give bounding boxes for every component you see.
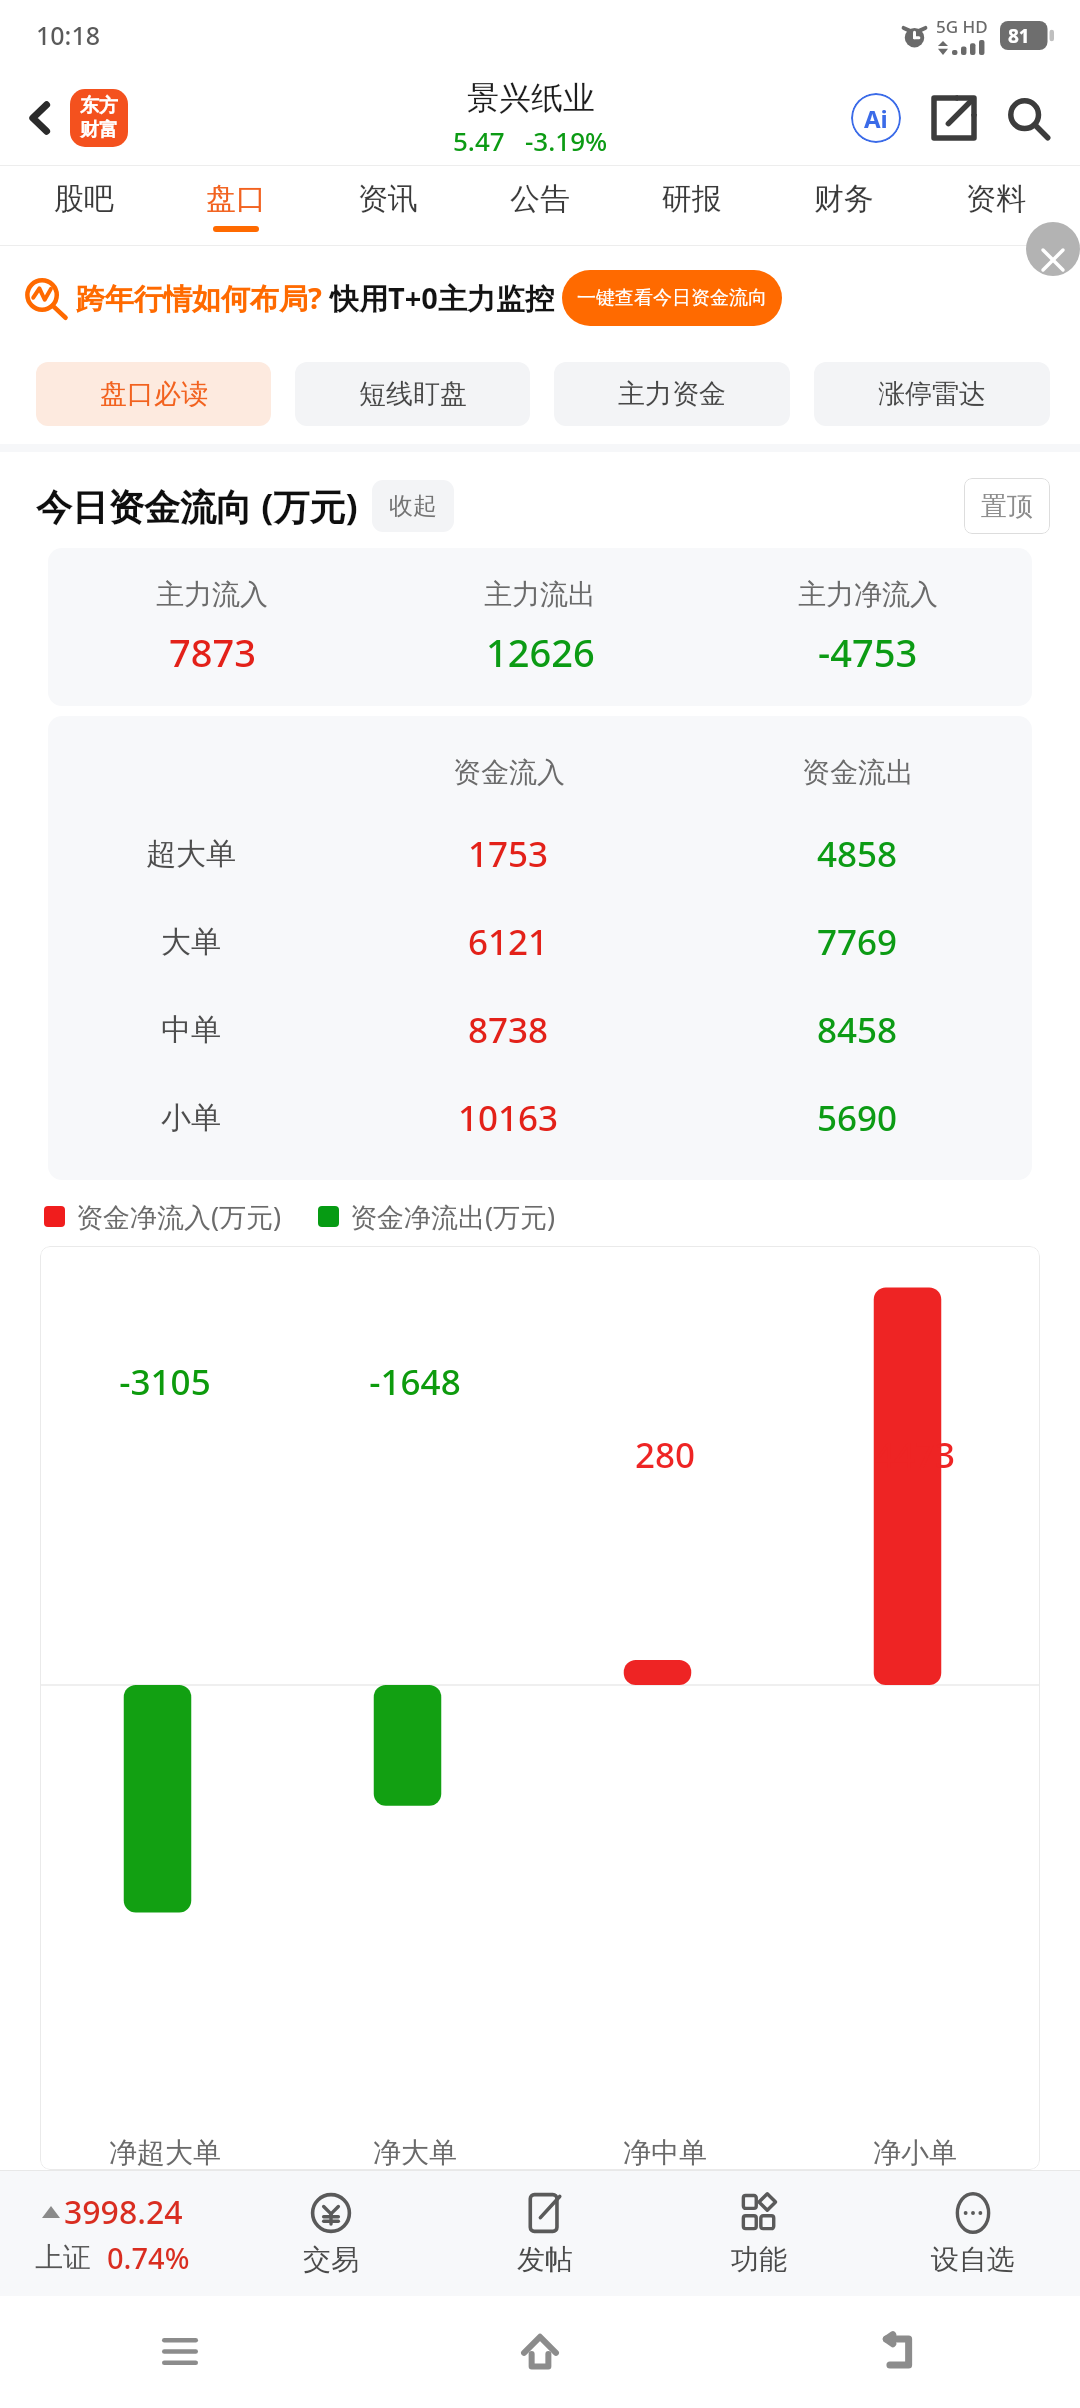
button[interactable]: 主力流入 <box>48 548 1032 706</box>
button[interactable]: 设自选 <box>866 2170 1080 2296</box>
staticText: 资料 <box>966 180 1026 218</box>
staticText: 净中单 <box>540 2135 790 2170</box>
staticText: 大单 <box>161 923 221 961</box>
button[interactable]: Search <box>996 86 1060 150</box>
staticText: 跨年行情如何布局? <box>76 278 322 318</box>
staticText: 资金净流出(万元) <box>350 1198 556 1235</box>
staticText: 5.47 <box>453 123 505 158</box>
button[interactable]: 研报 <box>616 166 768 246</box>
button[interactable]: 3998.24 <box>0 2170 224 2296</box>
staticText: 3998.24 <box>64 2190 183 2234</box>
staticText: 一键查看今日资金流向 <box>577 286 767 310</box>
staticText: 净大单 <box>290 2135 540 2170</box>
staticText: 5G HD <box>936 15 988 38</box>
button[interactable]: 大单 <box>48 898 1032 986</box>
staticText: 主力流入 <box>156 577 268 612</box>
button[interactable]: 短线盯盘 <box>295 362 530 426</box>
staticText: 盘口必读 <box>100 377 208 411</box>
button[interactable]: 主力资金 <box>554 362 790 426</box>
staticText: 中单 <box>161 1011 221 1049</box>
staticText: 设自选 <box>931 2242 1015 2277</box>
button[interactable]: 置顶 <box>964 478 1050 534</box>
button[interactable]: 盘口必读 <box>36 362 271 426</box>
staticText: 公告 <box>510 180 570 218</box>
staticText: 研报 <box>662 180 722 218</box>
button[interactable]: 公告 <box>464 166 616 246</box>
staticText: -3.19% <box>525 123 608 158</box>
button[interactable]: 中单 <box>48 986 1032 1074</box>
staticText: 景兴纸业 <box>467 78 595 118</box>
staticText: 12626 <box>486 626 595 678</box>
button[interactable]: 盘口 <box>160 166 312 246</box>
staticText: 10163 <box>458 1094 559 1142</box>
staticText: 4473 <box>790 1431 1040 1479</box>
staticText: 资金流出 <box>802 755 914 790</box>
staticText: 短线盯盘 <box>359 377 467 411</box>
button[interactable]: 资料 <box>920 166 1072 246</box>
button[interactable]: Close ad <box>1026 222 1080 276</box>
staticText: -3105 <box>40 1358 290 1406</box>
staticText: -1648 <box>290 1358 540 1406</box>
staticText: 资金流入 <box>453 755 565 790</box>
staticText: 280 <box>540 1431 790 1479</box>
staticText: 资讯 <box>358 180 418 218</box>
button[interactable]: 涨停雷达 <box>814 362 1050 426</box>
staticText: 财务 <box>814 180 874 218</box>
staticText: 涨停雷达 <box>878 377 986 411</box>
button[interactable]: Back <box>10 88 70 148</box>
staticText: 收起 <box>389 491 437 521</box>
staticText: 发帖 <box>517 2242 573 2277</box>
button[interactable]: 功能 <box>652 2170 866 2296</box>
staticText: 财富 <box>80 118 118 142</box>
button[interactable]: Home <box>360 2296 720 2408</box>
staticText: 4858 <box>817 830 898 878</box>
staticText: 上证 <box>35 2240 91 2275</box>
staticText: 8738 <box>468 1006 549 1054</box>
staticText: 6121 <box>468 918 549 966</box>
staticText: Ai <box>864 102 888 135</box>
button[interactable]: 跨年行情如何布局? <box>24 246 1064 350</box>
staticText: 资金净流入(万元) <box>76 1198 282 1235</box>
staticText: 7769 <box>817 918 898 966</box>
staticText: 盘口 <box>206 180 266 218</box>
staticText: 置顶 <box>981 490 1033 523</box>
button[interactable]: Back <box>720 2296 1080 2408</box>
staticText: 主力净流入 <box>798 577 938 612</box>
button[interactable]: AI assistant <box>844 86 908 150</box>
staticText: 主力资金 <box>618 377 726 411</box>
button[interactable]: Recent apps <box>0 2296 360 2408</box>
button[interactable]: 一键查看今日资金流向 <box>562 270 782 326</box>
staticText: 10:18 <box>36 18 101 52</box>
button[interactable]: 资讯 <box>312 166 464 246</box>
staticText: 净小单 <box>790 2135 1040 2170</box>
staticText: 1753 <box>468 830 549 878</box>
staticText: 8458 <box>817 1006 898 1054</box>
staticText: -4753 <box>818 626 918 678</box>
staticText: 7873 <box>169 626 256 678</box>
button[interactable]: 小单 <box>48 1074 1032 1162</box>
staticText: 5690 <box>817 1094 898 1142</box>
staticText: 超大单 <box>146 835 236 873</box>
staticText: 0.74% <box>107 2238 190 2277</box>
staticText: 今日资金流向 (万元) <box>36 482 358 531</box>
button[interactable]: 财务 <box>768 166 920 246</box>
staticText: 功能 <box>731 2242 787 2277</box>
button[interactable]: 收起 <box>372 480 454 532</box>
button[interactable]: 超大单 <box>48 810 1032 898</box>
staticText: 快用T+0主力监控 <box>330 278 554 318</box>
staticText: 股吧 <box>54 180 114 218</box>
staticText: 东方 <box>80 94 118 118</box>
button[interactable]: 发帖 <box>438 2170 652 2296</box>
button[interactable]: Share <box>922 86 986 150</box>
staticText: 81 <box>1008 23 1030 49</box>
staticText: 主力流出 <box>484 577 596 612</box>
button[interactable]: East Money <box>70 89 128 147</box>
staticText: 交易 <box>303 2242 359 2277</box>
button[interactable]: 股吧 <box>8 166 160 246</box>
staticText: 净超大单 <box>40 2135 290 2170</box>
button[interactable]: 交易 <box>224 2170 438 2296</box>
staticText: 小单 <box>161 1099 221 1137</box>
